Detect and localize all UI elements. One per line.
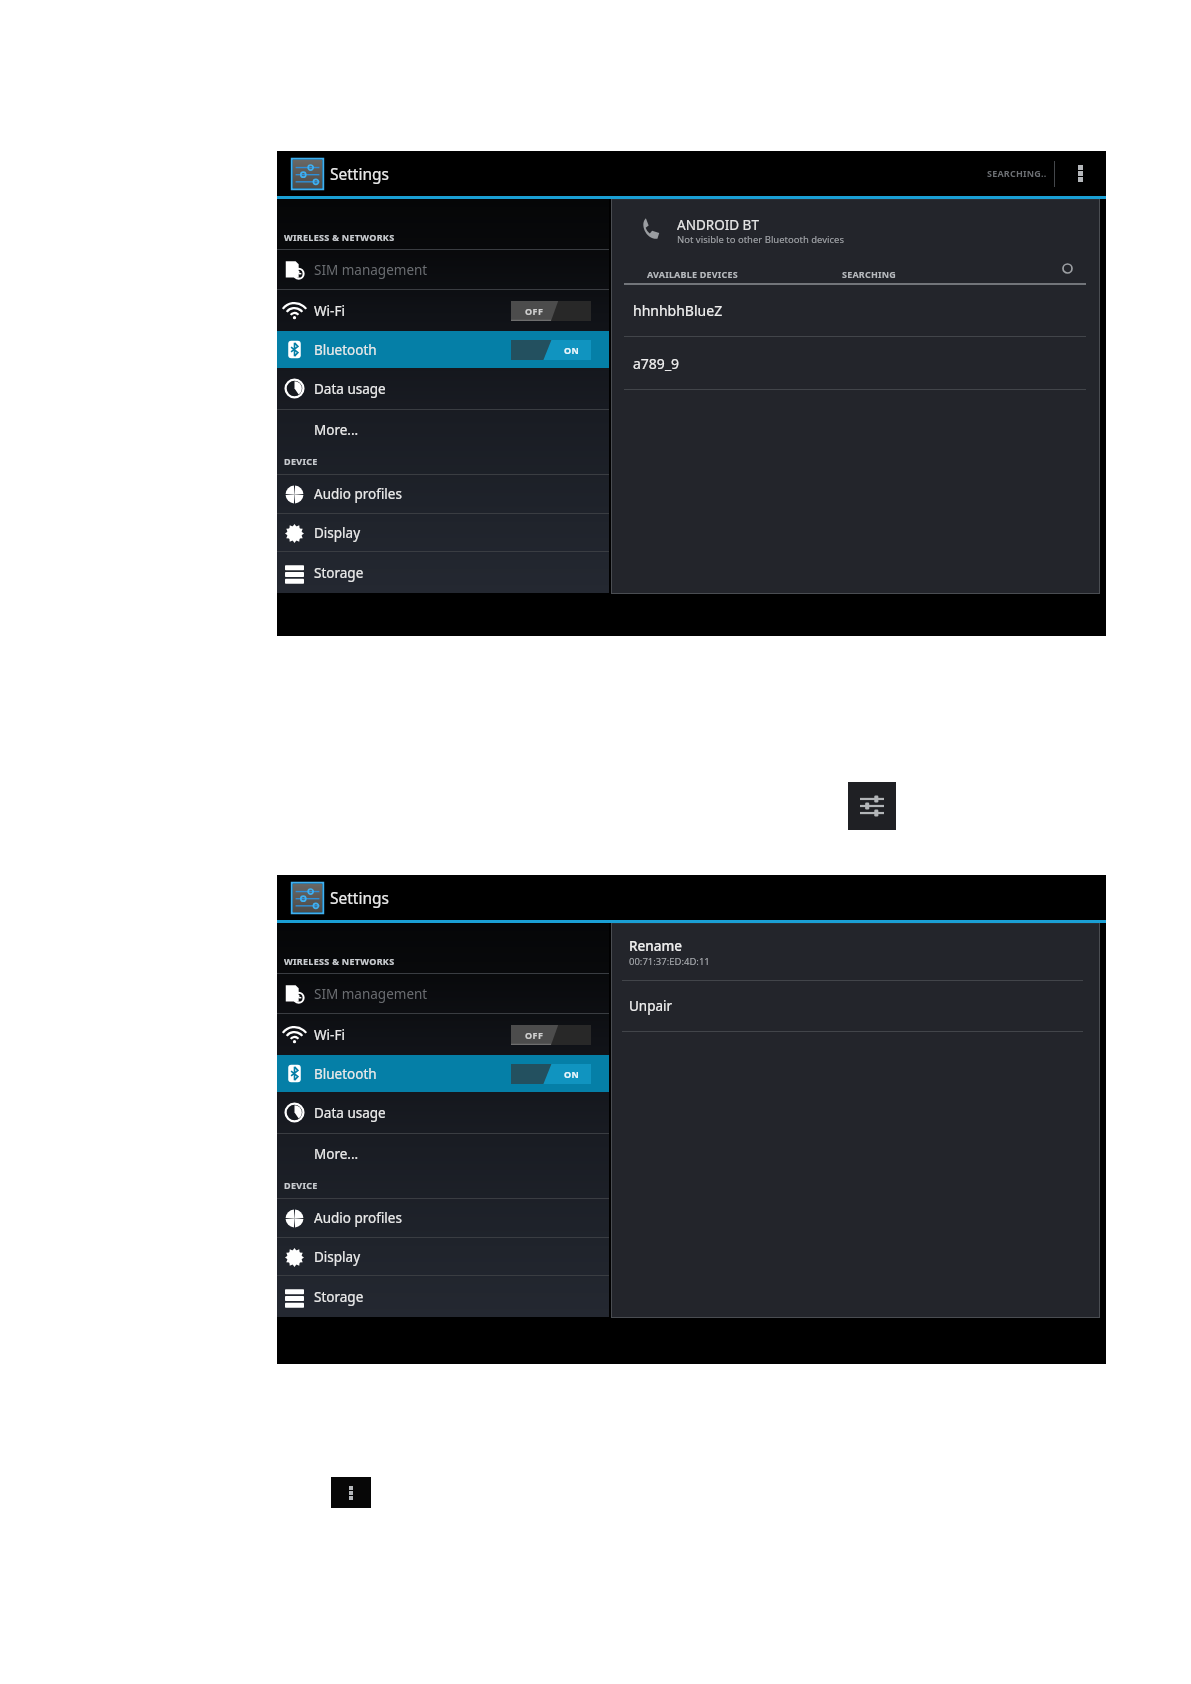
staticText: Rename xyxy=(629,937,683,955)
button[interactable]: SIM management xyxy=(277,974,609,1013)
staticText: Audio profiles xyxy=(314,485,402,503)
staticText: DEVICE xyxy=(284,1179,318,1191)
staticText: Wi-Fi xyxy=(314,1026,345,1044)
staticText: Display xyxy=(314,524,361,542)
staticText: Settings xyxy=(330,163,389,184)
staticText: OFF xyxy=(525,305,544,317)
staticText: Settings xyxy=(330,887,389,908)
button[interactable]: Rename xyxy=(612,923,1099,980)
button[interactable]: Wi-Fi xyxy=(277,1014,609,1055)
staticText: Unpair xyxy=(629,997,673,1015)
button[interactable]: Wi-Fi xyxy=(277,290,609,331)
button[interactable]: More... xyxy=(277,410,609,449)
staticText: Storage xyxy=(314,1288,364,1306)
button[interactable]: Unpair xyxy=(612,981,1099,1031)
staticText: SIM management xyxy=(314,985,428,1003)
staticText: SIM management xyxy=(314,261,428,279)
staticText: 00:71:37:ED:4D:11 xyxy=(629,955,710,968)
button[interactable]: OFF xyxy=(511,1025,591,1045)
staticText: More... xyxy=(314,421,359,439)
staticText: ANDROID BT xyxy=(677,216,759,234)
staticText: DEVICE xyxy=(284,455,318,467)
button[interactable]: Storage xyxy=(277,552,609,594)
button[interactable]: Data usage xyxy=(277,1092,609,1133)
staticText: Wi-Fi xyxy=(314,302,345,320)
button[interactable]: Bluetooth xyxy=(277,1055,609,1092)
staticText: Bluetooth xyxy=(314,341,377,359)
staticText: AVAILABLE DEVICES xyxy=(647,268,738,280)
button[interactable]: ON xyxy=(511,1064,591,1084)
button[interactable]: SIM management xyxy=(277,250,609,289)
button[interactable]: More options xyxy=(331,1477,371,1508)
staticText: Not visible to other Bluetooth devices xyxy=(677,233,845,246)
staticText: a789_9 xyxy=(633,354,680,373)
button[interactable]: Display xyxy=(277,514,609,552)
staticText: Data usage xyxy=(314,380,386,398)
button[interactable]: Audio profiles xyxy=(277,475,609,513)
button[interactable]: Display xyxy=(277,1238,609,1276)
staticText: SEARCHING.. xyxy=(987,167,1047,179)
button[interactable]: More options xyxy=(1061,151,1099,196)
staticText: ON xyxy=(564,1068,580,1080)
staticText: hhnhbhBlueZ xyxy=(633,301,723,320)
button[interactable]: a789_9 xyxy=(612,337,1099,389)
staticText: OFF xyxy=(525,1029,544,1041)
button[interactable]: Settings xyxy=(848,782,896,830)
staticText: WIRELESS & NETWORKS xyxy=(284,955,395,967)
button[interactable]: Storage xyxy=(277,1276,609,1318)
staticText: WIRELESS & NETWORKS xyxy=(284,231,395,243)
button[interactable]: ON xyxy=(511,340,591,360)
staticText: Storage xyxy=(314,564,364,582)
button[interactable]: Data usage xyxy=(277,368,609,409)
button[interactable]: OFF xyxy=(511,301,591,321)
button[interactable]: Bluetooth xyxy=(277,331,609,368)
staticText: SEARCHING xyxy=(842,268,896,280)
staticText: More... xyxy=(314,1145,359,1163)
button[interactable]: hhnhbhBlueZ xyxy=(612,284,1099,337)
button[interactable]: Audio profiles xyxy=(277,1199,609,1237)
staticText: Audio profiles xyxy=(314,1209,402,1227)
staticText: ON xyxy=(564,344,580,356)
staticText: Bluetooth xyxy=(314,1065,377,1083)
staticText: Data usage xyxy=(314,1104,386,1122)
staticText: Display xyxy=(314,1248,361,1266)
button[interactable]: More... xyxy=(277,1134,609,1173)
